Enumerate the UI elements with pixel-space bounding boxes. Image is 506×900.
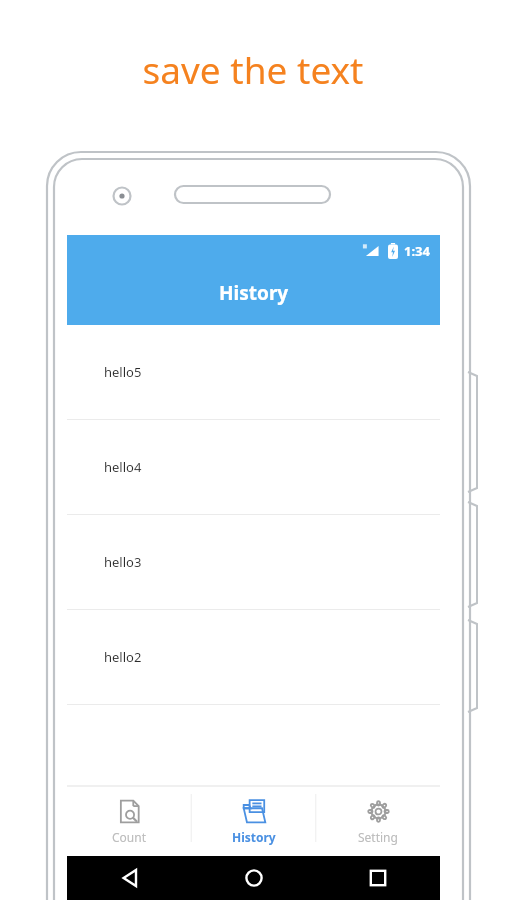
staticText: hello5 (104, 363, 142, 381)
button[interactable]: Setting (316, 786, 440, 856)
button[interactable]: History (192, 786, 316, 856)
button[interactable]: Recents (368, 868, 388, 888)
staticText: History (232, 829, 276, 845)
button[interactable]: hello5 (67, 325, 440, 420)
staticText: hello4 (104, 458, 142, 476)
staticText: Count (112, 829, 147, 845)
button[interactable]: hello3 (67, 515, 440, 610)
button[interactable]: Count (67, 786, 192, 856)
staticText: 1:34 (404, 242, 430, 260)
button[interactable]: Home (244, 868, 264, 888)
button[interactable]: hello2 (67, 610, 440, 705)
button[interactable]: Back (120, 868, 140, 888)
staticText: Setting (358, 829, 398, 845)
staticText: save the text (0, 44, 506, 94)
staticText: hello3 (104, 553, 142, 571)
button[interactable]: hello4 (67, 420, 440, 515)
staticText: hello2 (104, 648, 142, 666)
staticText: History (219, 280, 289, 306)
